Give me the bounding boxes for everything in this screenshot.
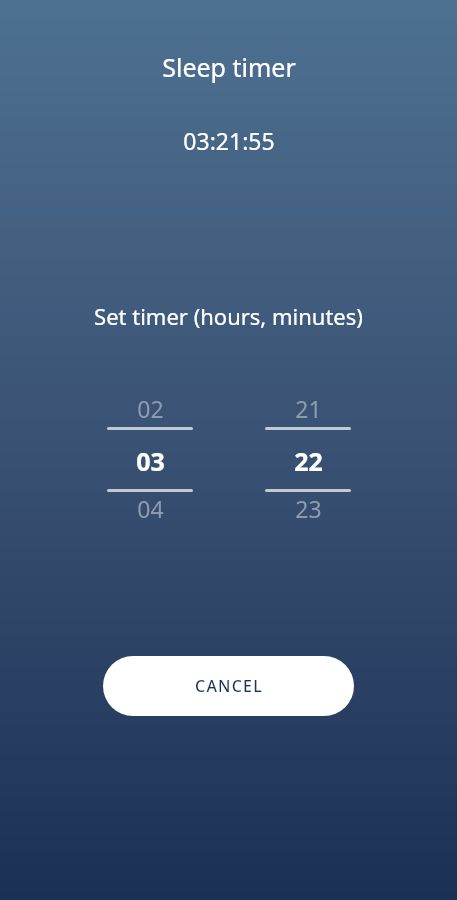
button[interactable]: CANCEL [103, 656, 354, 716]
staticText: CANCEL [195, 675, 263, 697]
staticText: 22 [294, 444, 323, 478]
staticText: 02 [137, 393, 164, 424]
staticText: 03:21:55 [183, 125, 275, 156]
staticText: Set timer (hours, minutes) [94, 301, 363, 331]
staticText: 03 [136, 444, 165, 478]
staticText: 23 [295, 493, 322, 524]
staticText: 04 [137, 493, 164, 524]
button[interactable]: Minutes picker [258, 380, 358, 525]
staticText: Sleep timer [162, 50, 296, 84]
button[interactable]: Hours picker [100, 380, 200, 525]
staticText: 21 [295, 393, 322, 424]
